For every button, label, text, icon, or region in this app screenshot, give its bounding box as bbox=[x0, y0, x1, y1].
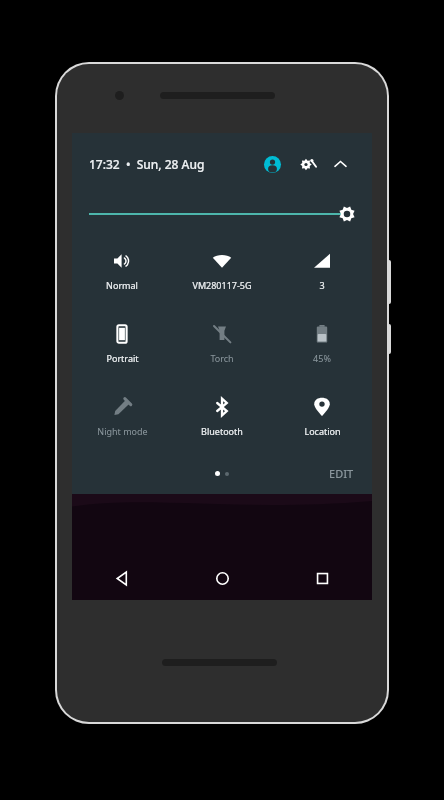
staticText: Torch bbox=[210, 352, 234, 364]
button[interactable]: Night mode bbox=[72, 383, 172, 456]
button[interactable]: 3 bbox=[272, 237, 372, 310]
button[interactable]: 45% bbox=[272, 310, 372, 383]
button[interactable]: VM280117-5G bbox=[172, 237, 272, 310]
button[interactable]: Normal bbox=[72, 237, 172, 310]
staticText: VM280117-5G bbox=[192, 279, 252, 291]
button[interactable]: Communica.. bbox=[254, 140, 310, 186]
button[interactable]: EDIT bbox=[323, 462, 360, 485]
staticText: Location bbox=[304, 425, 341, 437]
staticText: 17:32 • Sun, 28 Aug bbox=[89, 156, 205, 172]
button[interactable]: Media bbox=[134, 140, 190, 186]
staticText: Portrait bbox=[106, 352, 139, 364]
button[interactable]: Chrome bbox=[322, 233, 362, 273]
button[interactable]: Recents bbox=[305, 561, 339, 595]
button[interactable]: Back bbox=[105, 561, 139, 595]
button[interactable]: Brightness bbox=[72, 195, 372, 233]
button[interactable]: All apps bbox=[202, 233, 242, 273]
button[interactable]: Bluetooth bbox=[172, 383, 272, 456]
button[interactable]: Portrait bbox=[72, 310, 172, 383]
button[interactable]: Phone bbox=[82, 233, 122, 273]
button[interactable]: Home bbox=[205, 561, 239, 595]
staticText: 45% bbox=[313, 352, 331, 364]
button[interactable]: Torch bbox=[172, 310, 272, 383]
staticText: Night mode bbox=[97, 425, 148, 437]
staticText: Normal bbox=[106, 279, 138, 291]
button[interactable]: User bbox=[257, 149, 287, 179]
button[interactable]: Social bbox=[74, 140, 130, 186]
button[interactable]: Collapse bbox=[325, 149, 355, 179]
button[interactable]: Settings bbox=[292, 149, 322, 179]
button[interactable]: Location bbox=[272, 383, 372, 456]
button[interactable]: Weather bbox=[194, 140, 250, 186]
staticText: 3 bbox=[319, 279, 325, 291]
staticText: Bluetooth bbox=[201, 425, 243, 437]
button[interactable]: Play Store bbox=[314, 140, 370, 186]
staticText: EDIT bbox=[329, 466, 354, 481]
